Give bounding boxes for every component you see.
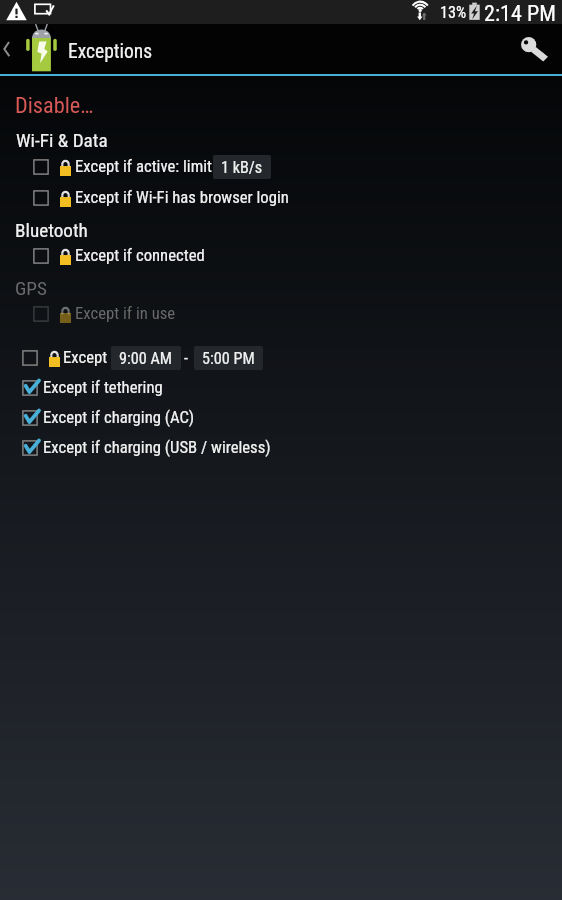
button[interactable]: Except if charging (USB / wireless) (0, 433, 562, 463)
staticText: GPS (15, 277, 47, 300)
staticText: 13% (440, 3, 467, 22)
staticText: - (184, 349, 189, 368)
button[interactable]: 9:00 AM (111, 346, 181, 370)
staticText: Except if tethering (43, 378, 163, 398)
staticText: 5:00 PM (202, 349, 255, 368)
staticText: 2:14 PM (484, 0, 556, 24)
button[interactable]: Navigate up (0, 24, 22, 75)
staticText: Bluetooth (15, 219, 88, 242)
staticText: 9:00 AM (119, 349, 173, 368)
button[interactable]: Except if tethering (0, 373, 562, 403)
staticText: Disable… (15, 92, 94, 118)
staticText: Except if charging (AC) (43, 408, 195, 428)
staticText: Except if Wi-Fi has browser login (75, 188, 289, 208)
staticText: Except (63, 348, 108, 368)
button[interactable]: Except (0, 343, 562, 373)
button[interactable]: 1 kB/s (213, 155, 271, 179)
button[interactable]: Except if active: limit (0, 152, 562, 182)
button[interactable]: 5:00 PM (194, 346, 263, 370)
button[interactable]: Except if charging (AC) (0, 403, 562, 433)
staticText: Except if connected (75, 246, 205, 266)
staticText: Wi-Fi & Data (16, 129, 108, 152)
button[interactable]: Disable… (15, 91, 105, 119)
staticText: Exceptions (68, 40, 153, 63)
button[interactable]: Except if Wi-Fi has browser login (0, 183, 562, 213)
staticText: Except if in use (75, 304, 176, 324)
staticText: Except if charging (USB / wireless) (43, 438, 271, 458)
button[interactable]: Except if in use (0, 299, 562, 329)
staticText: 1 kB/s (221, 158, 263, 177)
button[interactable]: Permissions (508, 24, 562, 75)
button[interactable]: Except if connected (0, 241, 562, 271)
staticText: Except if active: limit (75, 157, 212, 177)
